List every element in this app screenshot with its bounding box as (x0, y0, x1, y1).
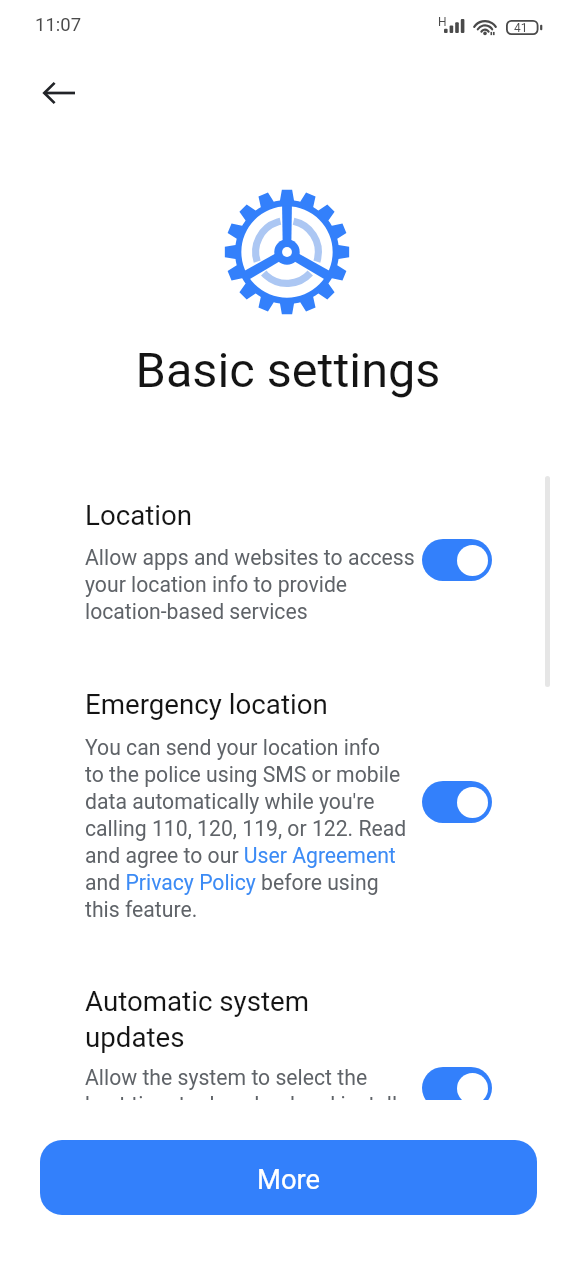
button[interactable]: More (40, 1140, 537, 1215)
staticText: Automatic system (85, 985, 309, 1017)
staticText: updates (85, 1021, 185, 1053)
staticText: H (438, 15, 447, 29)
staticText: Basic settings (0, 342, 576, 399)
staticText: More (257, 1164, 321, 1196)
button[interactable]: Toggle (422, 1067, 492, 1100)
staticText: Emergency location (85, 688, 328, 720)
staticText: You can send your location info to the p… (85, 734, 407, 923)
staticText: 41 (514, 21, 528, 35)
button[interactable]: Toggle (422, 539, 492, 581)
staticText: Allow the system to select the best time… (85, 1064, 398, 1100)
button[interactable]: Toggle (422, 781, 492, 823)
button[interactable]: Back (35, 69, 83, 117)
staticText: 11:07 (35, 14, 82, 36)
staticText: Allow apps and websites to access your l… (85, 544, 415, 625)
staticText: Location (85, 499, 193, 531)
